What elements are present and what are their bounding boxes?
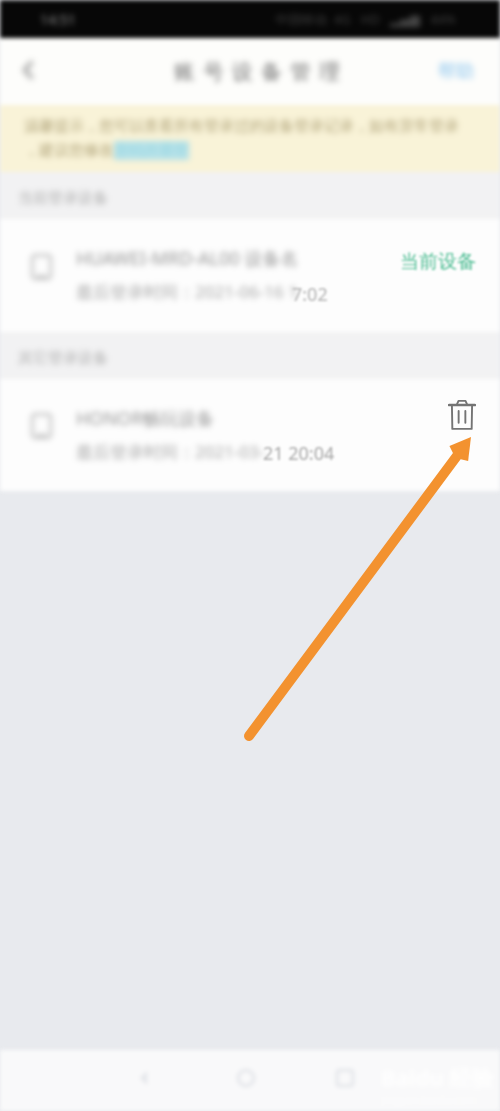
staticText: 中国移动 4G HD ▂▄▆ 44% (275, 10, 456, 28)
staticText: 账号设备管理 (170, 59, 344, 85)
staticText: HUAWEI-MRD-AL00 设备名 (76, 246, 299, 271)
staticText: 当前登录设备 (18, 189, 108, 208)
button[interactable]: Delete device (442, 396, 482, 436)
button[interactable]: 当前设备 (398, 248, 478, 276)
staticText: 最后登录时间：2021-06-16 1 (76, 280, 298, 303)
button[interactable]: 密码并重登 (114, 141, 189, 160)
staticText: 帮助 (438, 60, 474, 83)
staticText: 最后登录时间：2021-03- (76, 440, 265, 463)
staticText: 当前设备 (400, 250, 476, 274)
staticText: 14:51 (40, 10, 76, 29)
staticText: 21 20:04 (263, 441, 335, 466)
button[interactable]: 帮助 (420, 48, 500, 95)
staticText: HONOR畅玩设备 (76, 406, 215, 431)
button[interactable]: Back (0, 44, 56, 100)
button[interactable]: HONOR畅玩设备 (0, 379, 500, 491)
staticText: 7:02 (292, 282, 328, 307)
staticText: 其它登录设备 (18, 349, 108, 368)
staticText: 密码并重登 (114, 141, 189, 160)
staticText: ，建议您修改 (24, 141, 114, 160)
button[interactable]: HUAWEI-MRD-AL00 设备名 (0, 219, 500, 332)
staticText: 温馨提示，您可以查看所有登录过的设备登录记录，如有异常登录 (24, 117, 459, 136)
